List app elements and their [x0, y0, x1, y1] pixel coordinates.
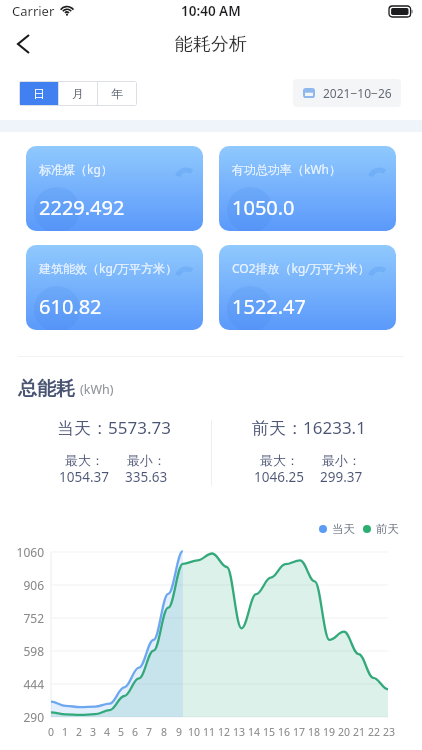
staticText: 4	[104, 725, 111, 739]
staticText: 1050.0	[232, 194, 295, 221]
staticText: 13	[233, 725, 246, 739]
staticText: 当天：5573.73	[57, 416, 171, 439]
button[interactable]: 日	[20, 82, 58, 105]
staticText: 906	[0, 577, 44, 593]
staticText: 日	[33, 86, 45, 101]
button[interactable]: 年	[98, 82, 136, 105]
staticText: 8	[161, 725, 168, 739]
staticText: 2229.492	[39, 194, 125, 221]
staticText: 标准煤（kg）	[39, 161, 113, 177]
staticText: 最小：	[127, 452, 166, 468]
staticText: 14	[248, 725, 261, 739]
staticText: 2	[76, 725, 83, 739]
staticText: 前天	[376, 522, 399, 536]
staticText: 23	[383, 725, 396, 739]
button[interactable]: Back	[0, 22, 46, 66]
staticText: Carrier	[12, 2, 55, 20]
button[interactable]: CO2排放（kg/万平方米）	[219, 245, 396, 330]
staticText: 2021−10−26	[323, 85, 392, 101]
staticText: 当天	[332, 522, 355, 536]
staticText: 1046.25	[254, 468, 304, 486]
button[interactable]: 月	[59, 82, 97, 105]
staticText: 前天：16233.1	[252, 416, 366, 439]
staticText: 16	[278, 725, 291, 739]
staticText: 22	[368, 725, 381, 739]
staticText: 21	[353, 725, 366, 739]
staticText: 18	[308, 725, 321, 739]
staticText: 月	[72, 86, 84, 101]
staticText: 610.82	[39, 293, 102, 320]
staticText: 444	[0, 676, 44, 692]
staticText: 11	[203, 725, 216, 739]
staticText: 6	[132, 725, 139, 739]
staticText: 17	[293, 725, 306, 739]
staticText: 12	[218, 725, 231, 739]
button[interactable]: 有功总功率（kWh）	[219, 146, 396, 231]
staticText: 建筑能效（kg/万平方米）	[39, 260, 178, 276]
button[interactable]: 标准煤（kg）	[26, 146, 203, 231]
staticText: 10:40 AM	[181, 2, 241, 20]
staticText: 能耗分析	[175, 33, 247, 56]
staticText: 598	[0, 643, 44, 659]
staticText: 299.37	[320, 468, 363, 486]
staticText: 15	[263, 725, 276, 739]
staticText: 752	[0, 610, 44, 626]
staticText: 19	[323, 725, 336, 739]
staticText: 年	[111, 86, 123, 101]
staticText: 5	[118, 725, 125, 739]
staticText: 290	[0, 709, 44, 725]
staticText: 1	[62, 725, 69, 739]
staticText: 1060	[0, 544, 44, 560]
staticText: 总能耗	[18, 377, 75, 401]
staticText: 1522.47	[232, 293, 306, 320]
staticText: (kWh)	[80, 381, 114, 398]
staticText: 0	[48, 725, 55, 739]
staticText: 20	[338, 725, 351, 739]
staticText: 有功总功率（kWh）	[232, 161, 341, 177]
button[interactable]: 建筑能效（kg/万平方米）	[26, 245, 203, 330]
staticText: 最小：	[322, 452, 361, 468]
staticText: 3	[90, 725, 97, 739]
staticText: 1054.37	[59, 468, 109, 486]
staticText: 最大：	[65, 452, 104, 468]
button[interactable]: 2021−10−26	[293, 79, 401, 107]
staticText: 335.63	[125, 468, 168, 486]
staticText: 9	[176, 725, 183, 739]
staticText: 10	[188, 725, 201, 739]
staticText: CO2排放（kg/万平方米）	[232, 260, 370, 276]
staticText: 最大：	[260, 452, 299, 468]
staticText: 7	[146, 725, 153, 739]
